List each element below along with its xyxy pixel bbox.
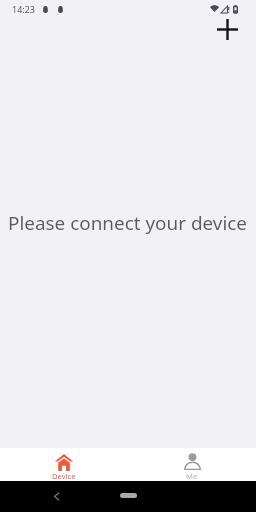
button[interactable]: Add device xyxy=(210,18,244,41)
staticText: Please connect your device xyxy=(8,210,248,236)
staticText: Device xyxy=(52,471,76,481)
button[interactable]: Me xyxy=(128,448,256,481)
button[interactable]: Device xyxy=(0,448,128,481)
staticText: 14:23 xyxy=(12,3,36,15)
button[interactable]: Back xyxy=(54,493,59,500)
staticText: Me xyxy=(186,471,198,481)
